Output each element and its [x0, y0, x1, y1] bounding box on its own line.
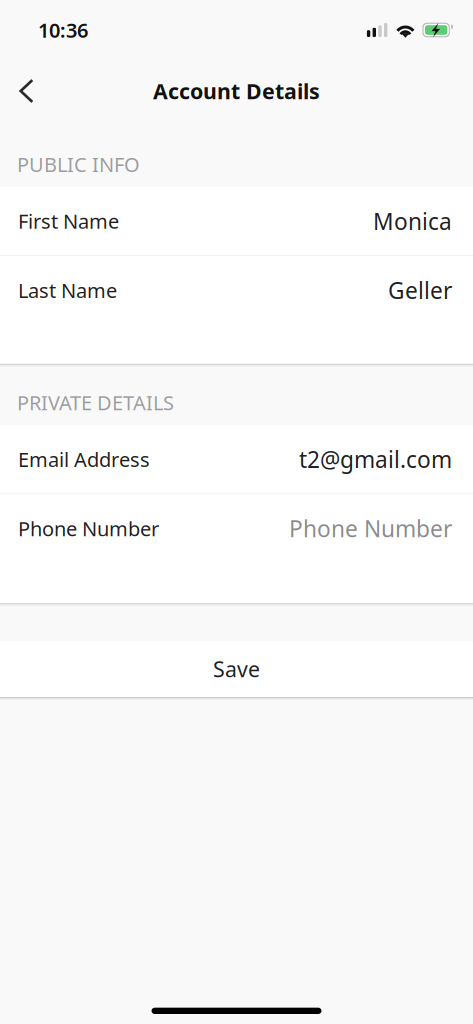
staticText: Monica: [373, 206, 452, 236]
button[interactable]: Last Name: [0, 256, 473, 324]
staticText: Account Details: [153, 77, 320, 105]
staticText: Phone Number: [289, 513, 452, 543]
staticText: Geller: [388, 275, 452, 305]
button[interactable]: Email Address: [0, 425, 473, 493]
button[interactable]: Phone Number: [0, 494, 473, 563]
staticText: 10:36: [38, 17, 88, 43]
staticText: First Name: [18, 208, 119, 234]
staticText: Email Address: [18, 446, 150, 473]
button[interactable]: Back: [0, 69, 53, 113]
staticText: PUBLIC INFO: [17, 151, 140, 177]
staticText: Save: [213, 655, 260, 683]
staticText: Last Name: [18, 277, 117, 304]
staticText: PRIVATE DETAILS: [17, 389, 174, 416]
button[interactable]: Save: [0, 641, 473, 697]
staticText: t2@gmail.com: [299, 444, 452, 474]
staticText: Phone Number: [18, 515, 159, 542]
button[interactable]: First Name: [0, 187, 473, 255]
